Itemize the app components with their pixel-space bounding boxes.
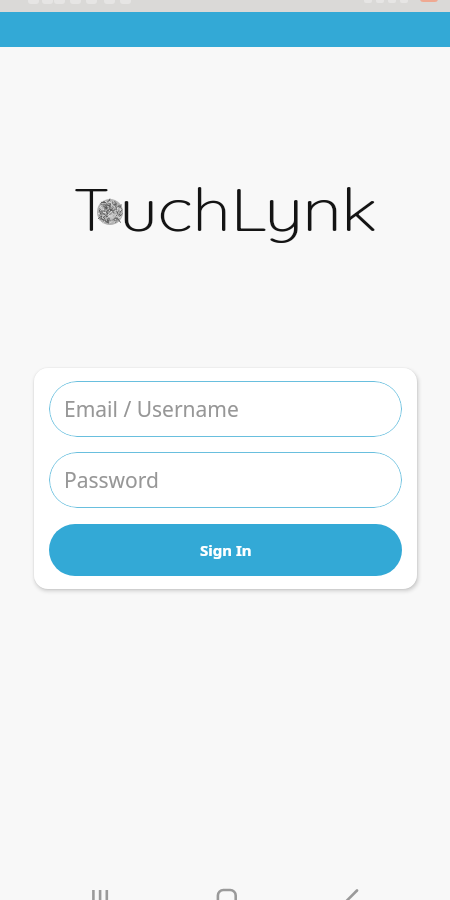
staticText: uchLynk — [119, 171, 377, 246]
button[interactable]: Password — [49, 452, 402, 508]
staticText: T — [74, 171, 110, 246]
staticText: T — [73, 171, 109, 246]
button[interactable]: Home — [202, 864, 248, 900]
staticText: Sign In — [200, 540, 252, 560]
staticText: Email / Username — [64, 395, 239, 424]
button[interactable]: Email / Username — [49, 381, 402, 437]
staticText: uchLynk — [120, 171, 377, 246]
button[interactable]: Sign In — [49, 524, 402, 576]
button[interactable]: Recent apps — [76, 864, 122, 900]
staticText: Password — [64, 466, 159, 495]
button[interactable]: Back — [334, 864, 380, 900]
